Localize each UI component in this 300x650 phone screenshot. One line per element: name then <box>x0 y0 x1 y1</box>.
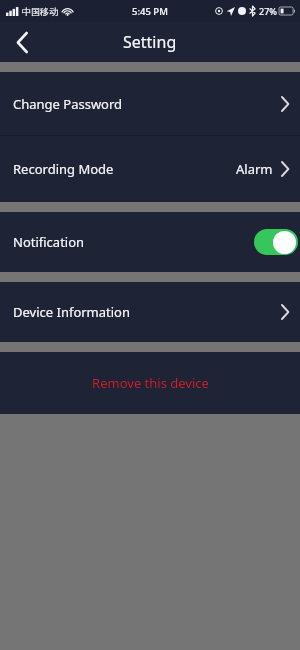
button[interactable]: Back <box>0 22 44 62</box>
staticText: 27% <box>259 5 277 17</box>
staticText: 中国移动 <box>22 6 58 17</box>
staticText: Change Password <box>13 95 123 113</box>
button[interactable]: Remove this device <box>0 352 300 414</box>
button[interactable]: Device Information <box>0 282 300 342</box>
button[interactable]: Recording Mode <box>0 136 300 202</box>
staticText: 5:45 PM <box>132 5 168 18</box>
button[interactable]: Notification toggle <box>254 229 298 255</box>
staticText: Recording Mode <box>13 160 114 178</box>
staticText: Notification <box>13 233 85 251</box>
staticText: Alarm <box>236 160 273 178</box>
button[interactable]: Change Password <box>0 72 300 135</box>
staticText: Device Information <box>13 303 131 321</box>
staticText: Remove this device <box>92 374 209 392</box>
staticText: Setting <box>123 31 177 53</box>
